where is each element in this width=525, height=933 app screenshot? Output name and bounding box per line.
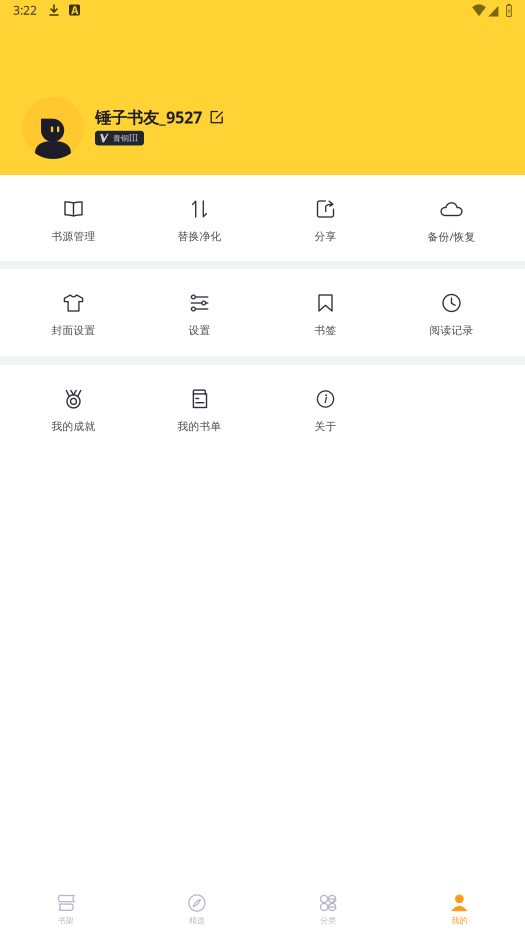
- staticText: 书架: [58, 916, 74, 925]
- button[interactable]: 设置: [136, 269, 262, 356]
- button[interactable]: 锤子书友_9527: [95, 107, 223, 128]
- staticText: 分享: [314, 230, 336, 243]
- button[interactable]: 关于: [262, 365, 388, 452]
- button[interactable]: 替换净化: [136, 175, 262, 262]
- staticText: 精选: [189, 916, 205, 925]
- button[interactable]: 书签: [262, 269, 388, 356]
- staticText: 替换净化: [177, 230, 221, 243]
- staticText: 锤子书友_9527: [95, 107, 202, 128]
- staticText: 我的: [451, 916, 467, 925]
- button[interactable]: Profile photo: [22, 97, 84, 159]
- button[interactable]: 青铜III: [95, 131, 144, 145]
- staticText: 设置: [188, 324, 210, 337]
- button[interactable]: 我的成就: [10, 365, 136, 452]
- staticText: 阅读记录: [429, 324, 473, 337]
- button[interactable]: 封面设置: [10, 269, 136, 356]
- staticText: 书源管理: [51, 230, 95, 243]
- button[interactable]: 分享: [262, 175, 388, 262]
- button[interactable]: 书源管理: [10, 175, 136, 262]
- staticText: 我的成就: [51, 420, 95, 433]
- staticText: 我的书单: [177, 420, 221, 433]
- staticText: 分类: [320, 916, 336, 925]
- button[interactable]: 备份/恢复: [388, 175, 514, 262]
- staticText: 3:22: [13, 2, 37, 18]
- button[interactable]: 我的书单: [136, 365, 262, 452]
- button[interactable]: 精选: [131, 874, 262, 933]
- staticText: 封面设置: [51, 324, 95, 337]
- staticText: 关于: [314, 420, 336, 433]
- staticText: A: [71, 3, 78, 17]
- button[interactable]: 书架: [0, 874, 131, 933]
- button[interactable]: 分类: [262, 874, 394, 933]
- staticText: 备份/恢复: [427, 229, 475, 244]
- staticText: 青铜III: [113, 133, 138, 143]
- button[interactable]: 阅读记录: [388, 269, 514, 356]
- staticText: 书签: [314, 324, 336, 337]
- button[interactable]: 我的: [394, 874, 525, 933]
